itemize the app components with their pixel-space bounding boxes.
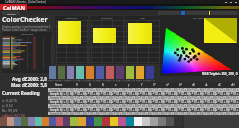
staticText: C${i + 1} [136, 79, 145, 82]
staticText: C${i + 1} [76, 79, 85, 82]
staticText: ${(r * 37 + c * 13) % 90 + 10} [213, 88, 226, 92]
staticText: x: 0,4216 [2, 98, 18, 103]
staticText: Passive ColorChecker™ target colors. [2, 28, 52, 32]
staticText: ${(r * 37 + c * 13) % 90 + 10} [226, 92, 239, 96]
staticText: ${(r * 37 + c * 13) % 90 + 10} [122, 100, 135, 104]
staticText: ${(r * 37 + c * 13) % 90 + 10} [187, 108, 200, 112]
staticText: ${(r * 37 + c * 13) % 90 + 10} [96, 104, 109, 108]
staticText: Hue [140, 16, 145, 19]
staticText: ${(r * 37 + c * 13) % 90 + 10} [226, 108, 239, 112]
staticText: ${(r * 37 + c * 13) % 90 + 10} [109, 104, 122, 108]
staticText: ${(r * 37 + c * 13) % 90 + 10} [83, 96, 96, 100]
staticText: ${(r * 37 + c * 13) % 90 + 10} [109, 108, 122, 112]
staticText: Sample ${r + 1} [50, 112, 69, 115]
staticText: RGB Triplet: 255, 255, 0 [202, 72, 238, 76]
staticText: C${i + 1} [126, 79, 135, 82]
staticText: ${(r * 37 + c * 13) % 90 + 10} [161, 104, 174, 108]
staticText: RL: 99,69 [2, 108, 18, 113]
staticText: ${(r * 37 + c * 13) % 90 + 10} [122, 92, 135, 96]
staticText: ${(r * 37 + c * 13) % 90 + 10} [70, 100, 83, 104]
staticText: ${(r * 37 + c * 13) % 90 + 10} [174, 88, 187, 92]
staticText: ${(r * 37 + c * 13) % 90 + 10} [174, 96, 187, 100]
staticText: ${(r * 37 + c * 13) % 90 + 10} [148, 92, 161, 96]
staticText: ${(r * 37 + c * 13) % 90 + 10} [83, 104, 96, 108]
staticText: ${(r * 37 + c * 13) % 90 + 10} [200, 112, 213, 115]
staticText: cd/m²: 341,56 [2, 113, 26, 118]
staticText: ${(r * 37 + c * 13) % 90 + 10} [200, 92, 213, 96]
staticText: CalMAN [3, 4, 25, 11]
button[interactable]: Window control [233, 0, 238, 4]
staticText: Session [7, 12, 16, 15]
staticText: ${(r * 37 + c * 13) % 90 + 10} [122, 104, 135, 108]
staticText: ${(r * 37 + c * 13) % 90 + 10} [174, 104, 187, 108]
staticText: Sample ${r + 1} [50, 108, 69, 112]
button[interactable]: Session [2, 11, 20, 15]
staticText: C${i + 1} [96, 79, 105, 82]
staticText: ${(r * 37 + c * 13) % 90 + 10} [161, 100, 174, 104]
staticText: Name [55, 83, 63, 87]
staticText: y: 0,52 [2, 103, 13, 108]
staticText: ${(r * 37 + c * 13) % 90 + 10} [148, 88, 161, 92]
staticText: ${(r * 37 + c * 13) % 90 + 10} [83, 88, 96, 92]
staticText: ${(r * 37 + c * 13) % 90 + 10} [226, 100, 239, 104]
staticText: ${(r * 37 + c * 13) % 90 + 10} [70, 108, 83, 112]
staticText: ${(r * 37 + c * 13) % 90 + 10} [83, 92, 96, 96]
staticText: C${i + 1} [57, 79, 66, 82]
staticText: C${i + 1} [48, 79, 57, 82]
staticText: ${(r * 37 + c * 13) % 90 + 10} [135, 104, 148, 108]
staticText: ${(r * 37 + c * 13) % 90 + 10} [96, 108, 109, 112]
staticText: C${i + 1} [66, 79, 75, 82]
staticText: ${(r * 37 + c * 13) % 90 + 10} [122, 108, 135, 112]
staticText: CIE 1931 xy [193, 16, 206, 19]
staticText: ${(r * 37 + c * 13) % 90 + 10} [200, 88, 213, 92]
staticText: ${(r * 37 + c * 13) % 90 + 10} [96, 88, 109, 92]
staticText: dE [192, 83, 196, 87]
button[interactable]: Window control [228, 0, 233, 4]
staticText: Sample ${r + 1} [50, 92, 69, 96]
staticText: ${(r * 37 + c * 13) % 90 + 10} [161, 96, 174, 100]
staticText: Luminance [65, 16, 78, 19]
staticText: ${(r * 37 + c * 13) % 90 + 10} [161, 108, 174, 112]
staticText: ${(r * 37 + c * 13) % 90 + 10} [135, 108, 148, 112]
staticText: ${(r * 37 + c * 13) % 90 + 10} [200, 108, 213, 112]
staticText: ${(r * 37 + c * 13) % 90 + 10} [109, 92, 122, 96]
staticText: C${i + 1} [116, 79, 125, 82]
staticText: Current Reading [2, 90, 40, 96]
staticText: ${(r * 37 + c * 13) % 90 + 10} [174, 108, 187, 112]
staticText: ${(r * 37 + c * 13) % 90 + 10} [96, 92, 109, 96]
staticText: ${(r * 37 + c * 13) % 90 + 10} [83, 112, 96, 115]
staticText: ${(r * 37 + c * 13) % 90 + 10} [161, 88, 174, 92]
staticText: ${(r * 37 + c * 13) % 90 + 10} [70, 112, 83, 115]
staticText: Sample ${r + 1} [50, 96, 69, 100]
staticText: ${(r * 37 + c * 13) % 90 + 10} [187, 112, 200, 115]
staticText: ${(r * 37 + c * 13) % 90 + 10} [187, 104, 200, 108]
staticText: ${(r * 37 + c * 13) % 90 + 10} [226, 96, 239, 100]
staticText: ${(r * 37 + c * 13) % 90 + 10} [213, 104, 226, 108]
staticText: ${(r * 37 + c * 13) % 90 + 10} [70, 92, 83, 96]
staticText: ${(r * 37 + c * 13) % 90 + 10} [70, 96, 83, 100]
staticText: ${(r * 37 + c * 13) % 90 + 10} [148, 108, 161, 112]
staticText: ${(r * 37 + c * 13) % 90 + 10} [174, 100, 187, 104]
staticText: ${(r * 37 + c * 13) % 90 + 10} [213, 100, 226, 104]
staticText: R [76, 83, 78, 87]
staticText: Max dE2000: 5,8 [11, 82, 47, 88]
staticText: ${(r * 37 + c * 13) % 90 + 10} [161, 92, 174, 96]
staticText: ${(r * 37 + c * 13) % 90 + 10} [187, 88, 200, 92]
staticText: y [128, 83, 130, 87]
button[interactable]: Window control [223, 0, 228, 4]
staticText: a* [166, 83, 169, 87]
staticText: ${(r * 37 + c * 13) % 90 + 10} [83, 108, 96, 112]
staticText: Delta 2000 [21, 32, 34, 35]
staticText: ${(r * 37 + c * 13) % 90 + 10} [226, 104, 239, 108]
staticText: ${(r * 37 + c * 13) % 90 + 10} [70, 104, 83, 108]
staticText: ${(r * 37 + c * 13) % 90 + 10} [148, 96, 161, 100]
staticText: Avg dE2000: 2,8 [12, 76, 47, 82]
staticText: ${(r * 37 + c * 13) % 90 + 10} [200, 104, 213, 108]
staticText: ${(r * 37 + c * 13) % 90 + 10} [226, 88, 239, 92]
staticText: ${(r * 37 + c * 13) % 90 + 10} [213, 96, 226, 100]
staticText: C${i + 1} [86, 79, 95, 82]
